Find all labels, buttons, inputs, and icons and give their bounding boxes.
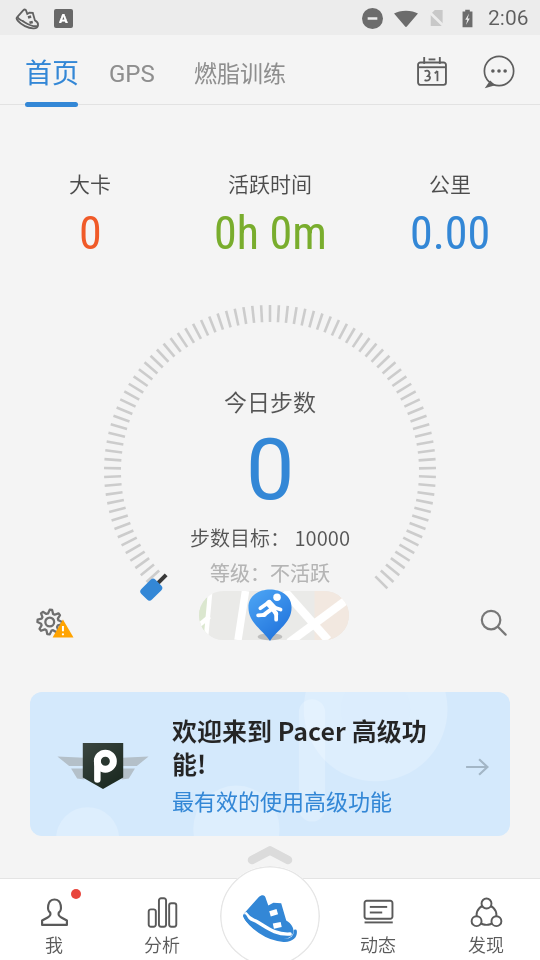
staticText: 公里 (429, 168, 471, 198)
staticText: GPS (109, 60, 155, 88)
staticText: 2:06 (488, 6, 529, 31)
button[interactable]: 我 (0, 878, 108, 960)
staticText: A (59, 11, 68, 26)
button[interactable]: 发现 (432, 878, 540, 960)
button[interactable]: 分析 (108, 878, 216, 960)
button[interactable]: GPS (109, 60, 155, 88)
staticText: 活跃时间 (228, 168, 312, 198)
staticText: 动态 (360, 931, 396, 957)
staticText: 发现 (468, 931, 504, 957)
staticText: 能! (172, 745, 207, 781)
button[interactable]: 燃脂训练 (194, 55, 286, 88)
staticText: 燃脂训练 (194, 55, 286, 88)
staticText: 0.00 (410, 206, 491, 260)
staticText: 0 (246, 419, 295, 520)
button[interactable]: Messages (476, 51, 520, 95)
button[interactable]: 活跃时间 (180, 168, 360, 260)
staticText: 今日步数 (224, 384, 316, 417)
button[interactable]: Search (470, 599, 520, 649)
staticText: 欢迎来到 Pacer 高级功 (172, 712, 427, 748)
button[interactable]: 公里 (360, 168, 540, 260)
staticText: 首页 (25, 52, 79, 91)
button[interactable]: Start activity (220, 866, 320, 960)
staticText: 分析 (144, 931, 180, 957)
button[interactable]: Calendar (410, 50, 454, 94)
staticText: 最有效的使用高级功能 (172, 784, 393, 816)
staticText: 步数目标： 10000 (190, 523, 350, 552)
staticText: 0h 0m (214, 206, 327, 260)
staticText: 大卡 (69, 168, 111, 198)
button[interactable]: 欢迎来到 Pacer 高级功 (30, 692, 510, 836)
button[interactable]: 大卡 (0, 168, 180, 260)
button[interactable]: 动态 (324, 878, 432, 960)
button[interactable]: Settings (31, 600, 83, 652)
button[interactable]: 首页 (25, 52, 79, 91)
staticText: 0 (79, 206, 102, 260)
button[interactable]: Map (199, 591, 349, 640)
staticText: 等级：不活跃 (210, 558, 330, 587)
staticText: 我 (45, 931, 63, 957)
